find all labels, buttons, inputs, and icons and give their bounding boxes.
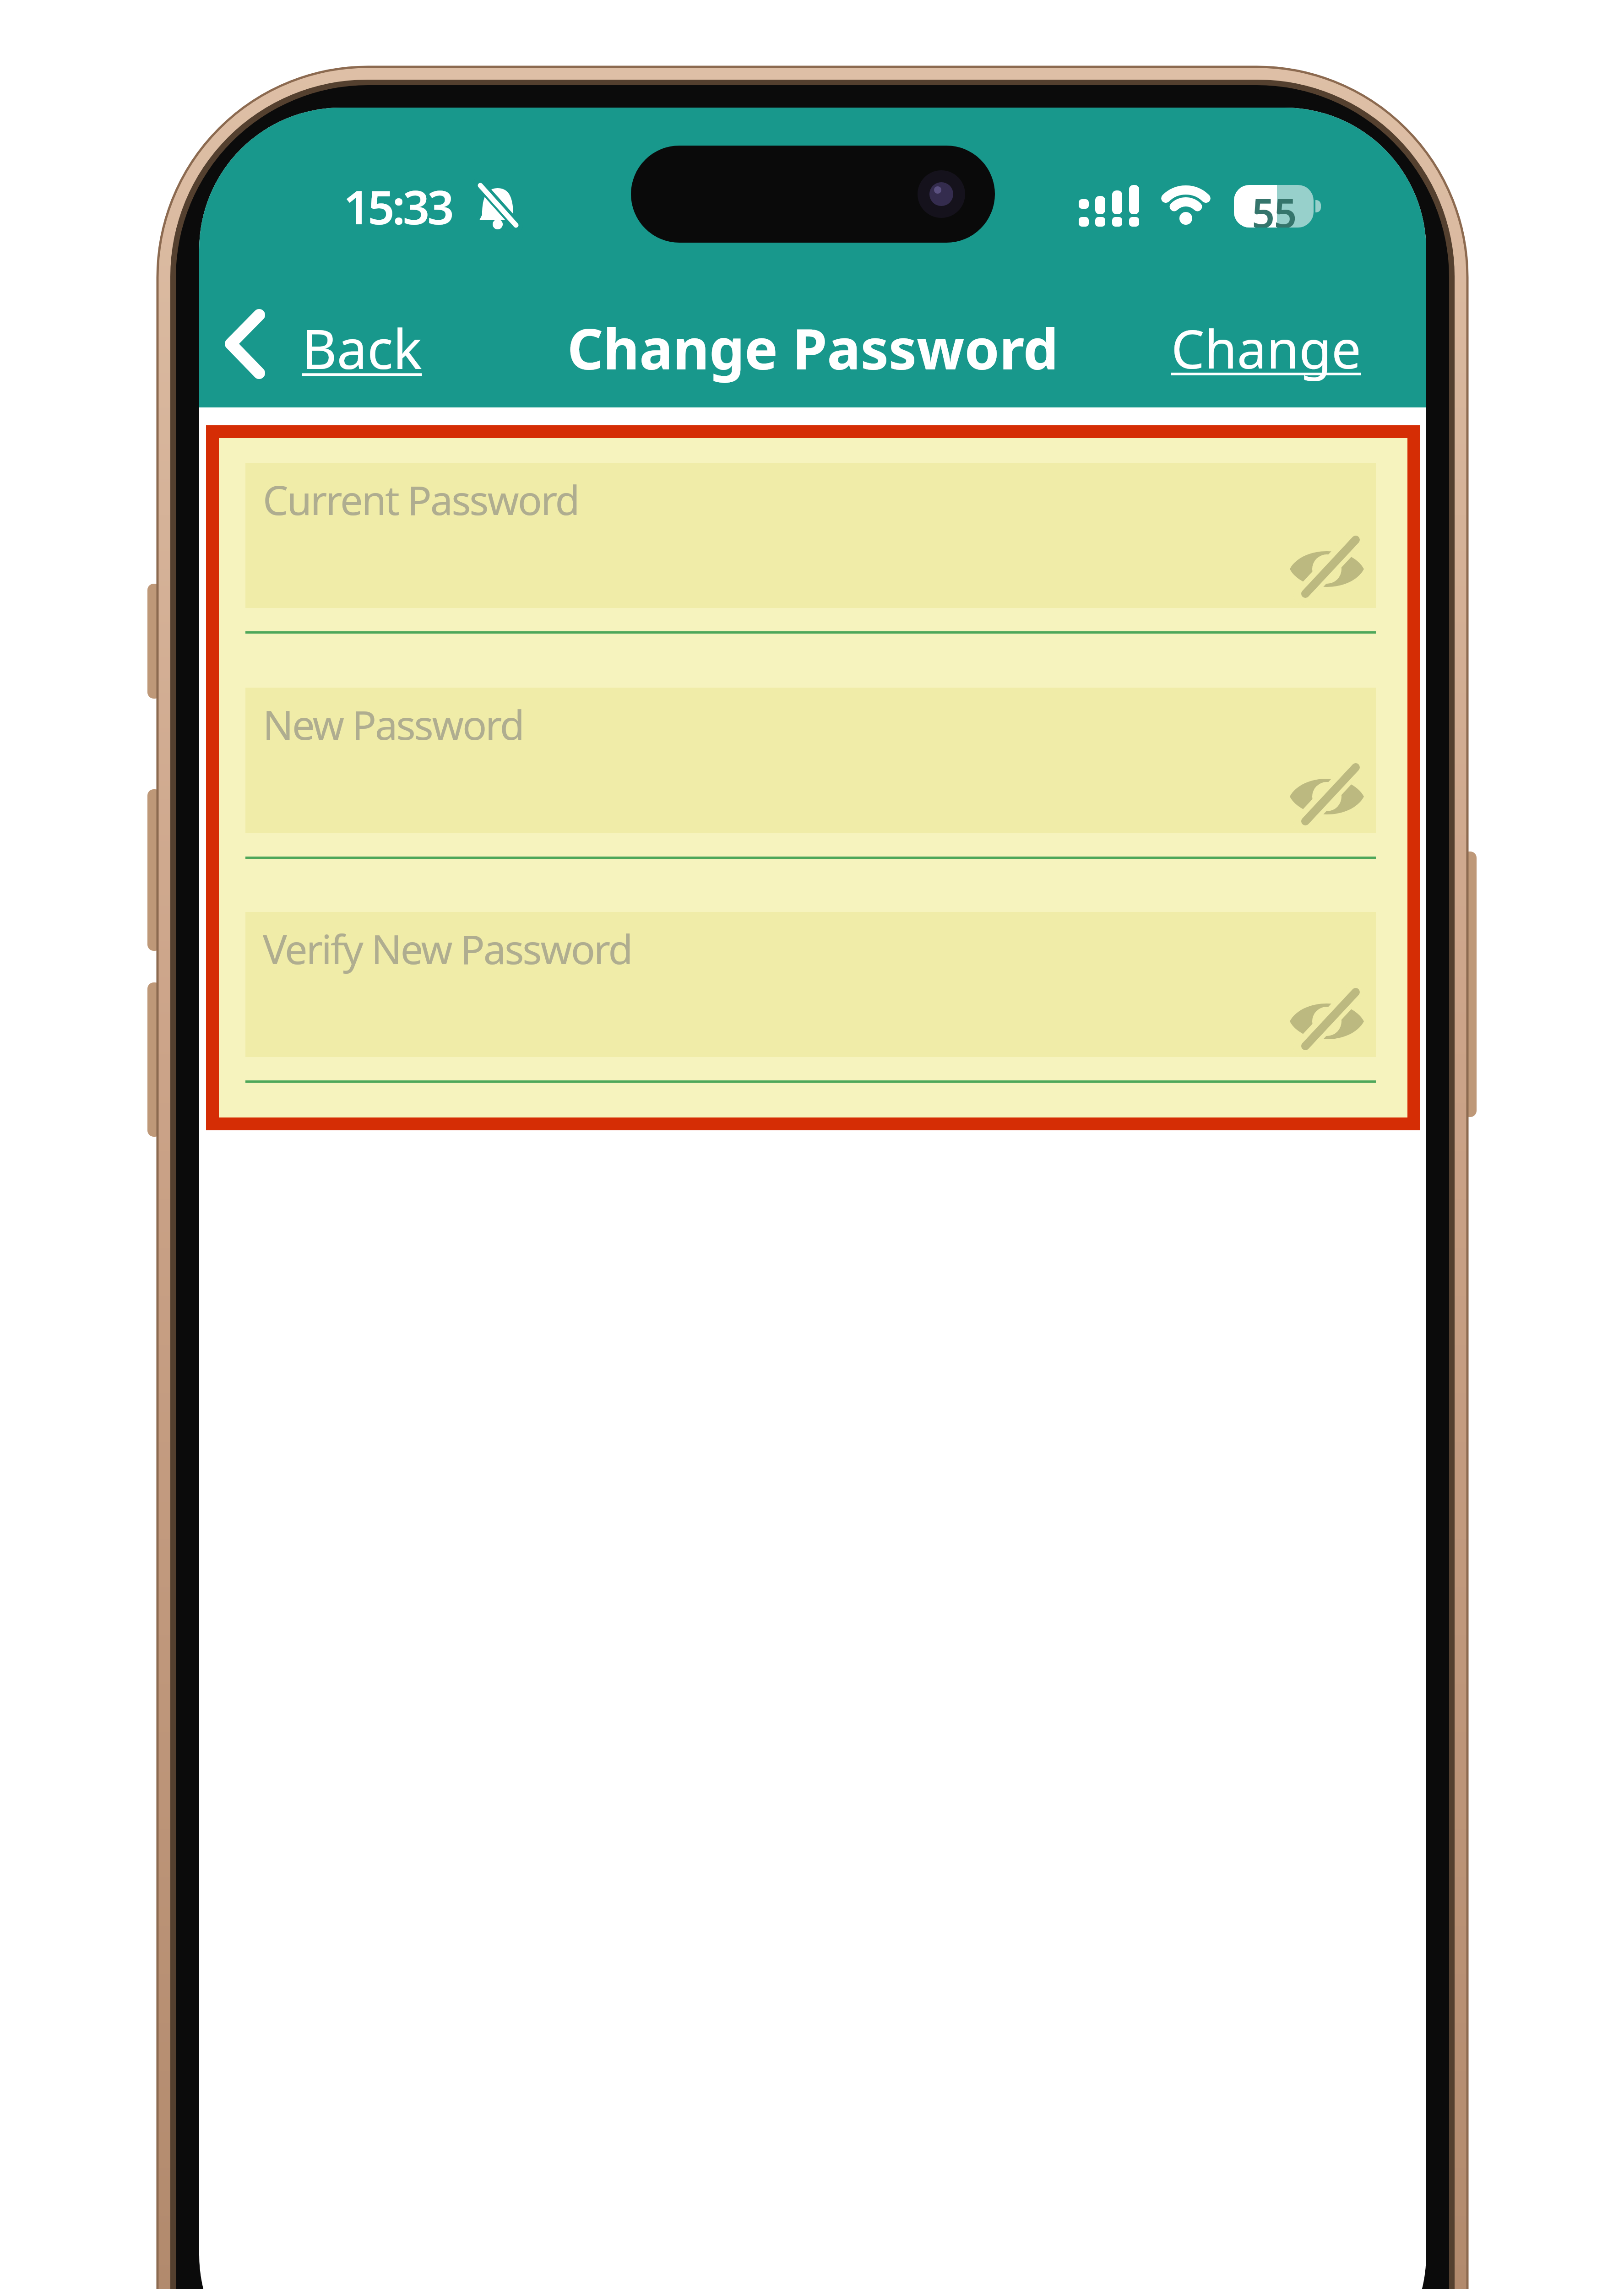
staticText: Change (1171, 312, 1361, 381)
staticText: New Password (263, 697, 523, 752)
staticText: Current Password (263, 472, 579, 527)
button[interactable]: Back (268, 311, 456, 380)
staticText: Back (302, 311, 422, 380)
button[interactable]: Verify New Password (245, 912, 1376, 1057)
staticText: Verify New Password (263, 921, 632, 976)
staticText: 15:33 (343, 174, 452, 238)
button[interactable]: New Password (245, 688, 1376, 833)
button[interactable]: Change (1149, 312, 1383, 381)
button[interactable] (1290, 542, 1364, 593)
staticText: Change Password (567, 310, 1059, 386)
button[interactable]: Current Password (245, 463, 1376, 608)
button[interactable] (1290, 995, 1364, 1045)
staticText: 55 (1252, 185, 1296, 228)
button[interactable] (1290, 770, 1364, 820)
